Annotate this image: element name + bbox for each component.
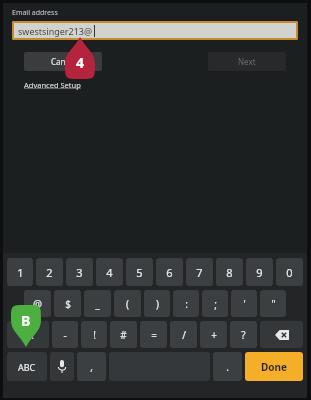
staticText: ABC [18,361,36,373]
staticText: ; [214,297,217,311]
button[interactable]: Backspace [260,321,303,348]
button[interactable]: Cancel [24,52,102,71]
staticText: Done [261,360,288,374]
button[interactable]: ABC [7,352,47,381]
staticText: B [21,311,31,330]
staticText: , [90,360,93,374]
staticText: ( [126,297,129,311]
staticText: $ [65,297,71,311]
button[interactable]: _ [84,290,111,317]
button[interactable]: ) [144,290,170,317]
staticText: 1 [17,265,24,280]
staticText: 7 [196,265,203,280]
button[interactable]: swestsinger213@ [12,21,298,40]
button[interactable]: ( [114,290,141,317]
staticText: + [211,328,217,342]
button[interactable]: ' [231,290,257,317]
button[interactable]: 5 [126,258,153,286]
button[interactable]: 9 [246,258,273,286]
button[interactable]: ; [202,290,228,317]
button[interactable]: 8 [216,258,243,286]
staticText: Email address [12,8,58,18]
staticText: 5 [136,265,143,280]
staticText: ~\{ [23,329,34,340]
staticText: Next [238,56,256,67]
staticText: 9 [256,265,263,280]
button[interactable]: 2 [36,258,63,286]
button[interactable]: 7 [186,258,213,286]
button[interactable]: , [77,352,106,381]
button[interactable]: / [170,321,197,348]
button[interactable]: 6 [156,258,183,286]
button[interactable]: $ [54,290,81,317]
button[interactable]: - [52,321,78,348]
staticText: _ [95,297,100,311]
staticText: @ [33,297,42,311]
staticText: Advanced Setup [24,80,81,90]
staticText: 4 [106,265,113,280]
button[interactable]: More symbols [7,321,49,348]
button[interactable]: : [173,290,199,317]
staticText: . [226,360,229,374]
staticText: ' [243,297,246,311]
button[interactable]: Voice input [50,352,74,381]
staticText: 3 [76,265,83,280]
button[interactable]: Next [208,52,286,71]
staticText: ) [156,297,159,311]
staticText: ? [241,328,246,342]
button[interactable]: Done [245,352,303,381]
staticText: 8 [226,265,233,280]
button[interactable]: 3 [66,258,93,286]
button[interactable]: Advanced Setup [24,80,81,90]
staticText: 2 [46,265,53,280]
staticText: 4 [76,53,85,72]
button[interactable]: # [110,321,137,348]
staticText: swestsinger213@ [18,25,93,37]
staticText: # [120,328,127,342]
button[interactable]: 0 [276,258,303,286]
staticText: ! [93,328,96,342]
staticText: 6 [166,265,173,280]
staticText: - [63,328,67,342]
button[interactable]: 4 [96,258,123,286]
button[interactable]: = [140,321,167,348]
staticText: = [151,328,157,342]
staticText: / [182,328,186,342]
button[interactable]: . [213,352,242,381]
button[interactable]: 1 [7,258,33,286]
staticText: " [271,297,276,311]
button[interactable]: ? [230,321,257,348]
staticText: 0 [286,265,293,280]
button[interactable]: " [260,290,286,317]
button[interactable]: + [200,321,227,348]
staticText: : [185,297,188,311]
button[interactable]: ! [81,321,107,348]
button[interactable]: @ [24,290,51,317]
staticText: Cancel [51,56,76,67]
